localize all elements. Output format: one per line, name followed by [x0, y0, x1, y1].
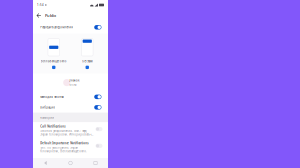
button[interactable]: Значок — [62, 74, 79, 92]
staticText: Тип: по умолчанию. Экран блокировки, Всп… — [40, 146, 87, 153]
button[interactable]: Recent apps — [83, 161, 108, 165]
staticText: Точка — [69, 83, 76, 86]
button[interactable]: Мелодия звонка — [33, 92, 108, 102]
staticText: вибрация — [40, 106, 55, 109]
button[interactable]: Back — [33, 11, 45, 20]
button[interactable]: вибрация — [33, 102, 108, 113]
staticText: Publix — [45, 13, 56, 18]
staticText: Всплывающее окно — [41, 59, 67, 63]
button[interactable]: Разрешить уведомления — [33, 21, 108, 34]
staticText: 1:54 — [37, 3, 44, 7]
staticText: Default Importance Notifications — [40, 141, 88, 145]
button[interactable]: Default Importance Notifications — [33, 139, 108, 155]
staticText: Call Notifications — [40, 125, 65, 128]
button[interactable]: Home — [58, 161, 83, 165]
button[interactable]: Без звука — [70, 39, 104, 69]
staticText: Мелодия звонка — [40, 95, 63, 99]
staticText: Разрешить уведомления — [40, 25, 73, 29]
staticText: Значок — [69, 79, 79, 82]
staticText: Звонок: уведомления. Вкл.: звук, Экран б… — [40, 129, 93, 136]
button[interactable]: Back — [33, 161, 58, 165]
button[interactable]: Call Notifications — [33, 122, 108, 139]
staticText: Без звука — [82, 59, 92, 63]
button[interactable]: Всплывающее окно — [37, 39, 70, 69]
staticText: Категории — [40, 116, 54, 119]
